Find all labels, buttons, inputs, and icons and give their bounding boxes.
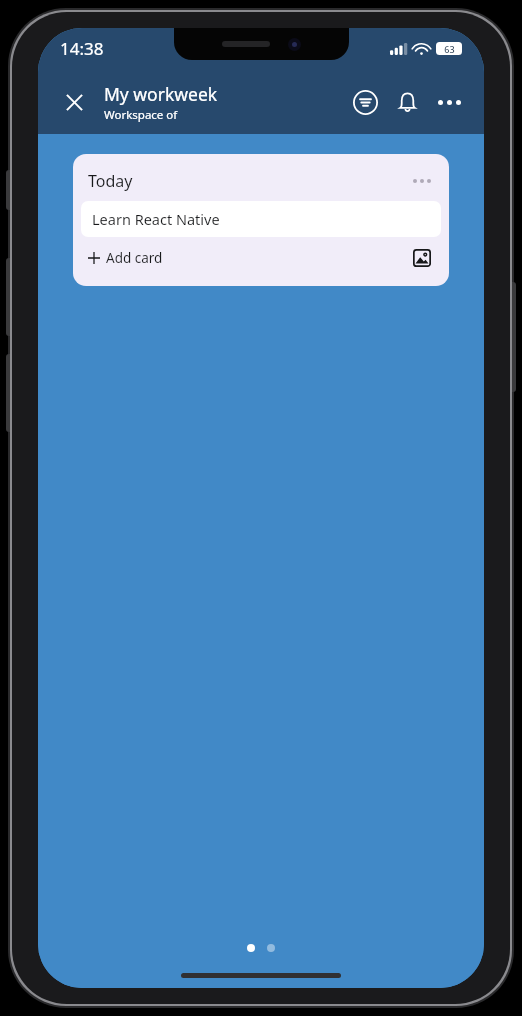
button[interactable]: More options xyxy=(428,81,470,123)
button[interactable]: Learn React Native xyxy=(81,201,441,237)
button[interactable]: Close xyxy=(52,80,96,124)
button[interactable]: List actions xyxy=(407,166,437,196)
staticText: My workweek xyxy=(104,82,218,106)
staticText: Today xyxy=(88,170,133,192)
staticText: Add card xyxy=(106,249,163,267)
button[interactable]: Add image xyxy=(403,239,441,277)
button[interactable]: Add card xyxy=(81,237,403,279)
staticText: 63 xyxy=(444,43,455,55)
staticText: Workspace of xyxy=(104,107,178,123)
button[interactable]: Notifications xyxy=(386,81,428,123)
button[interactable]: Filter xyxy=(344,81,386,123)
staticText: 14:38 xyxy=(60,37,104,60)
staticText: Learn React Native xyxy=(92,209,220,229)
button[interactable]: Today xyxy=(81,161,441,201)
